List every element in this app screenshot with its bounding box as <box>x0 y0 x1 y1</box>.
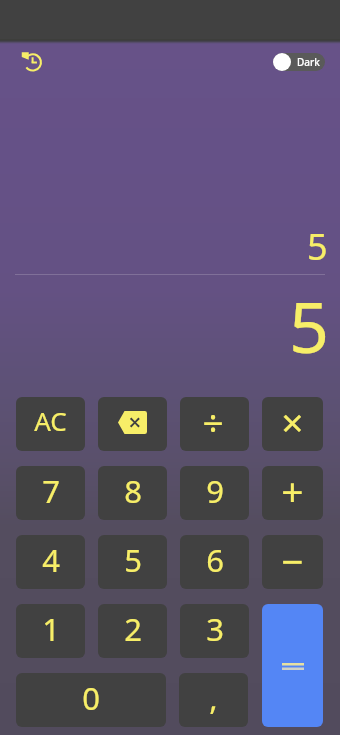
staticText: ÷ <box>202 397 224 446</box>
button[interactable]: History <box>14 46 46 78</box>
staticText: 5 <box>307 222 328 271</box>
staticText: 8 <box>124 470 142 512</box>
staticText: 6 <box>206 539 224 581</box>
staticText: 5 <box>289 278 330 373</box>
staticText: Dark <box>297 55 320 69</box>
staticText: , <box>209 677 218 719</box>
staticText: 5 <box>124 539 142 581</box>
button[interactable]: 5 <box>98 535 167 589</box>
staticText: AC <box>34 403 67 438</box>
button[interactable]: 4 <box>16 535 85 589</box>
staticText: 7 <box>42 470 60 512</box>
button[interactable]: Equals <box>262 604 323 727</box>
staticText: − <box>281 535 304 587</box>
button[interactable]: AC <box>16 397 85 451</box>
staticText: 1 <box>42 608 60 650</box>
button[interactable]: − <box>262 535 323 589</box>
staticText: 0 <box>82 677 100 719</box>
button[interactable]: 6 <box>180 535 249 589</box>
button[interactable]: × <box>262 397 323 451</box>
staticText: 9 <box>206 470 224 512</box>
staticText: 3 <box>206 608 224 650</box>
button[interactable]: 9 <box>180 466 249 520</box>
button[interactable]: Backspace <box>98 397 167 451</box>
button[interactable]: ÷ <box>180 397 249 451</box>
button[interactable]: + <box>262 466 323 520</box>
staticText: 4 <box>42 539 60 581</box>
staticText: × <box>281 397 304 448</box>
button[interactable]: Dark <box>273 51 325 73</box>
button[interactable]: , <box>179 673 248 727</box>
button[interactable]: 8 <box>98 466 167 520</box>
button[interactable]: 0 <box>16 673 166 727</box>
staticText: + <box>281 466 304 517</box>
button[interactable]: 1 <box>16 604 85 658</box>
button[interactable]: 7 <box>16 466 85 520</box>
staticText: 2 <box>124 608 142 650</box>
button[interactable]: 2 <box>98 604 167 658</box>
button[interactable]: 3 <box>180 604 249 658</box>
